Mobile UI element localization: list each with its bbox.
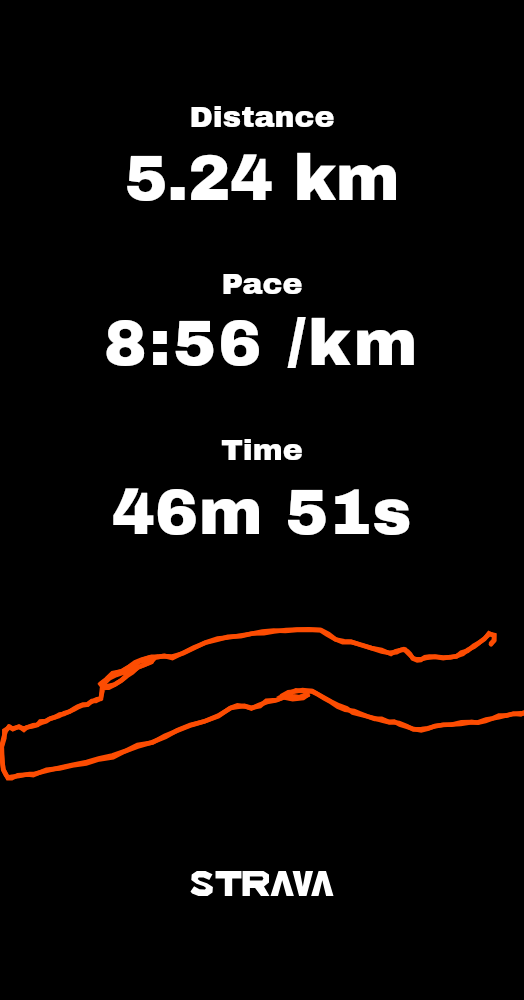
staticText: 8:56 /km bbox=[0, 309, 524, 379]
button[interactable]: Pace bbox=[0, 260, 524, 344]
button[interactable]: Strava bbox=[182, 862, 342, 906]
staticText: Pace bbox=[0, 268, 524, 301]
staticText: 46m 51s bbox=[0, 478, 524, 548]
staticText: Distance bbox=[0, 101, 524, 134]
staticText: 5.24 km bbox=[0, 144, 524, 214]
staticText: Time bbox=[0, 434, 524, 467]
button[interactable]: Time bbox=[0, 426, 524, 510]
other: Activity route map bbox=[0, 0, 524, 1000]
button[interactable]: Distance bbox=[0, 93, 524, 177]
